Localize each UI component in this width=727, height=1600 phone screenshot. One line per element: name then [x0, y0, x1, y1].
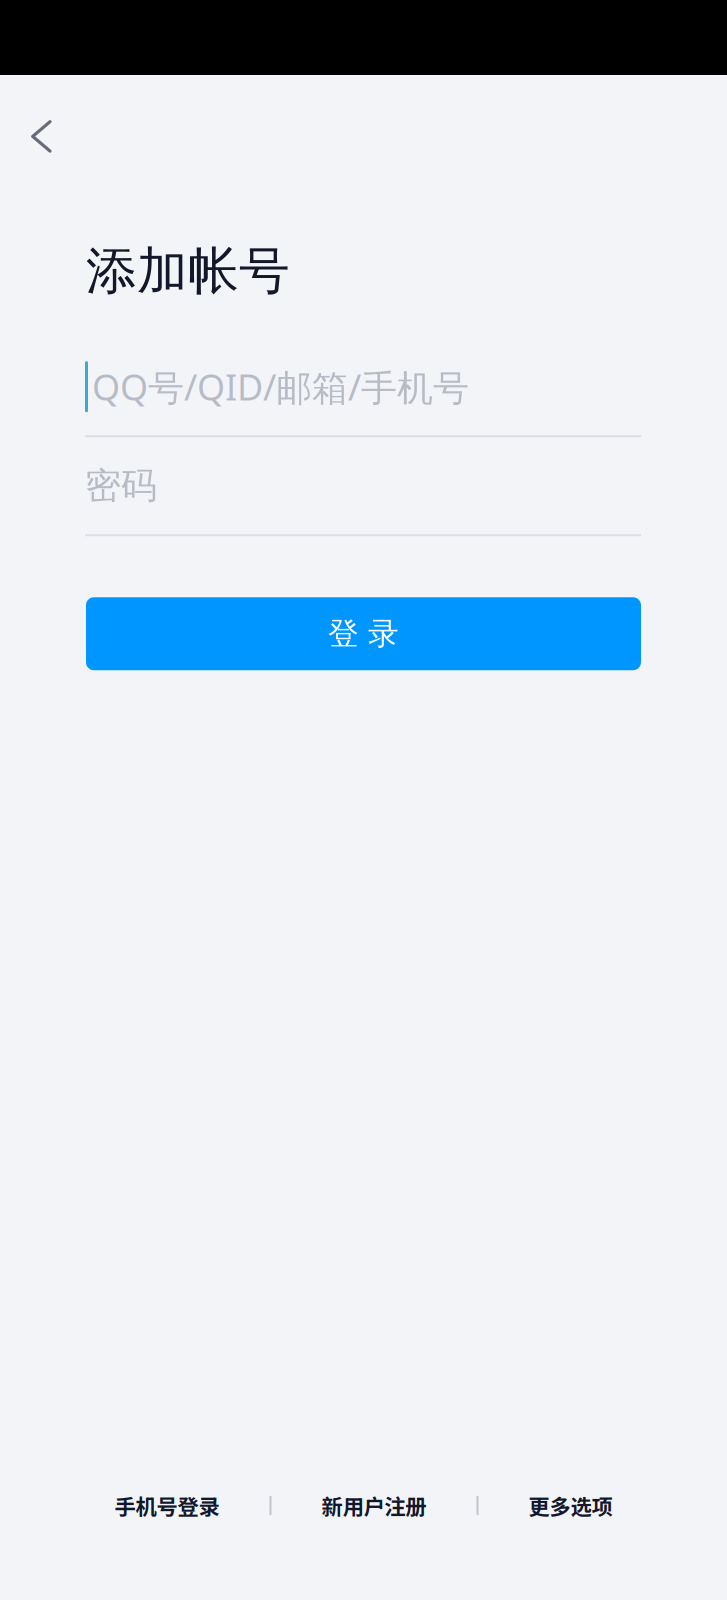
staticText: 更多选项 — [528, 1490, 612, 1521]
staticText: 新用户注册 — [321, 1490, 426, 1521]
button[interactable]: 登 录 — [86, 597, 641, 670]
staticText: 添加帐号 — [86, 240, 290, 302]
button[interactable]: 手机号登录 — [64, 1481, 269, 1530]
button[interactable]: QQ号/QID/邮箱/手机号 — [85, 338, 641, 437]
staticText: 手机号登录 — [114, 1490, 219, 1521]
button[interactable]: 新用户注册 — [271, 1481, 476, 1530]
button[interactable]: 密码 — [85, 437, 641, 536]
button[interactable]: Back — [0, 75, 78, 183]
staticText: QQ号/QID/邮箱/手机号 — [92, 363, 469, 411]
staticText: 登 录 — [328, 615, 399, 653]
button[interactable]: 更多选项 — [478, 1481, 662, 1530]
staticText: 密码 — [85, 464, 157, 508]
